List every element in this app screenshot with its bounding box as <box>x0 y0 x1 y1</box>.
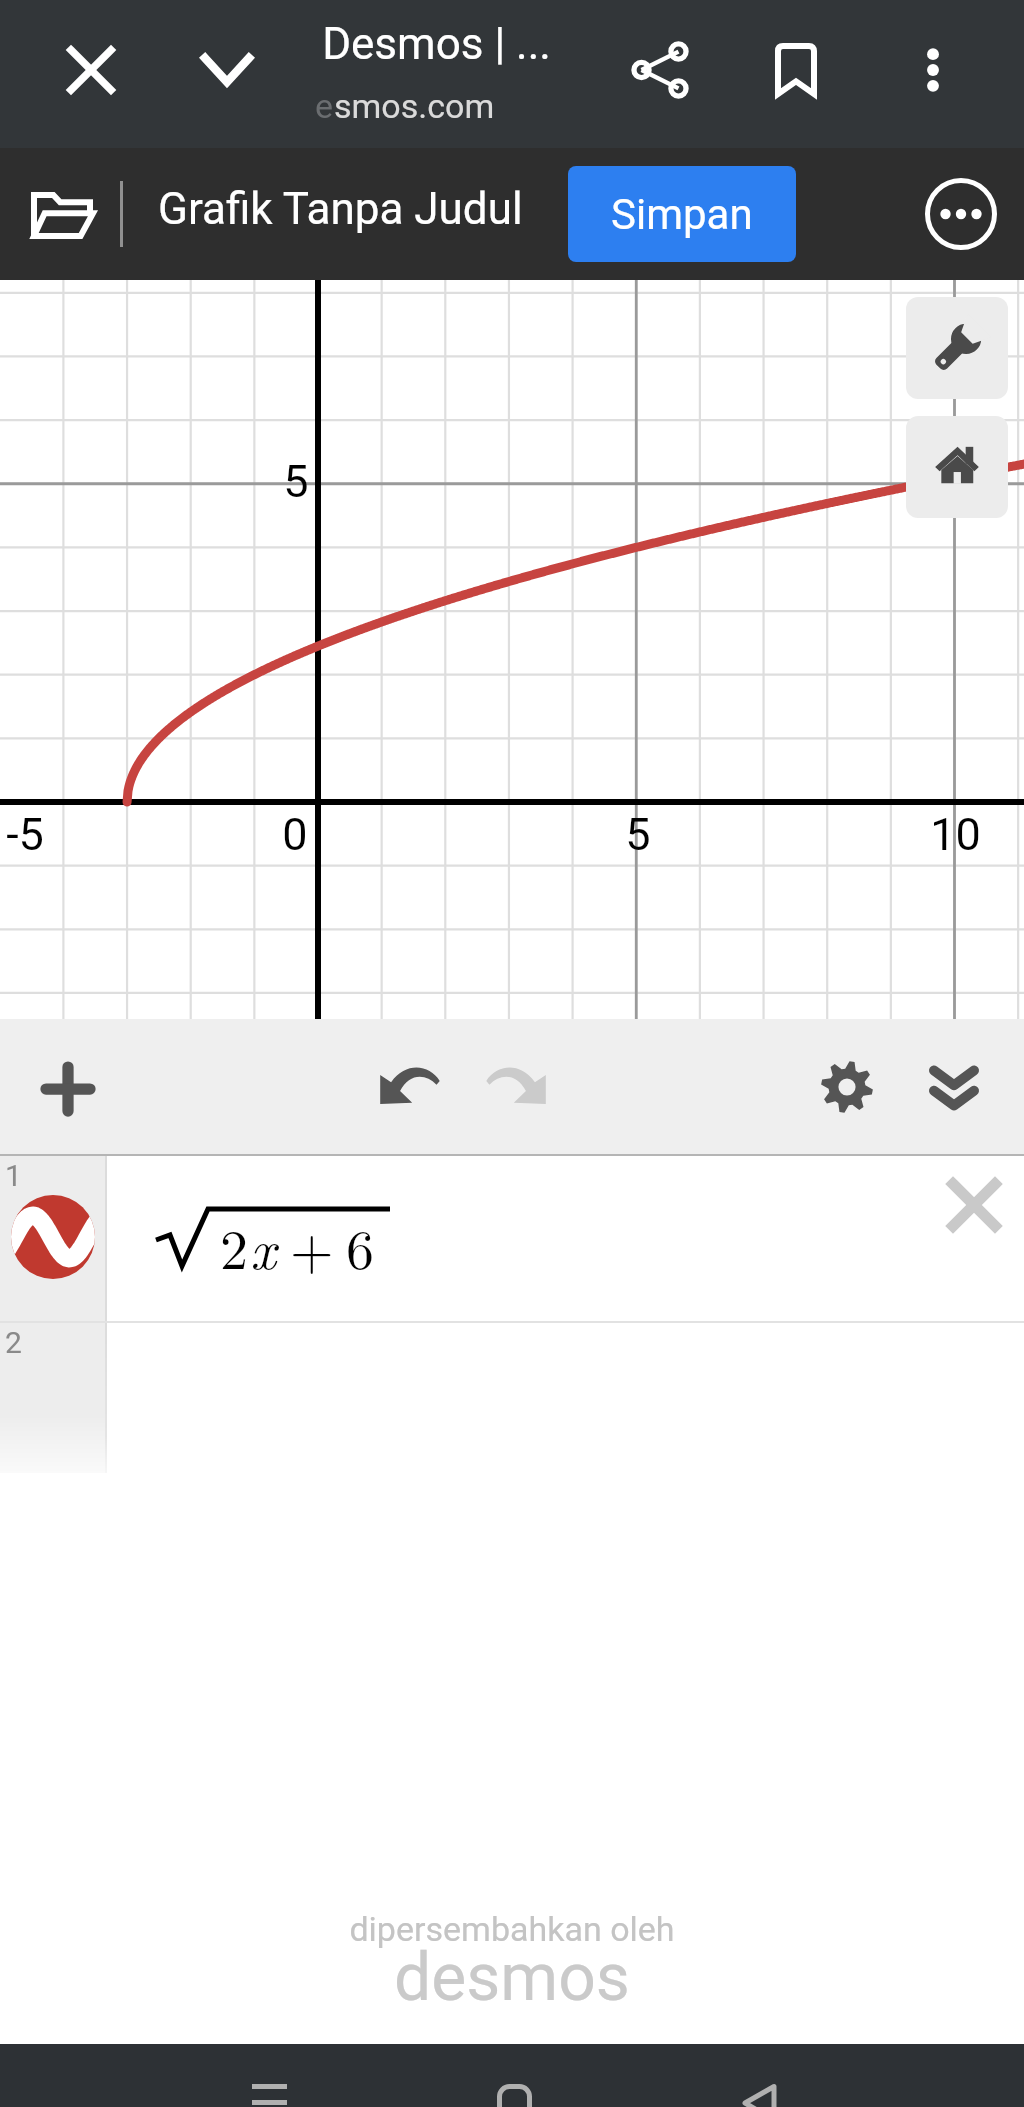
staticText: dipersembahkan oleh <box>349 1909 675 1949</box>
staticText: 0 <box>282 808 308 861</box>
staticText: x <box>250 1206 276 1285</box>
staticText: e <box>315 86 334 126</box>
button[interactable]: More options <box>885 22 981 118</box>
staticText: Desmos | ... <box>322 18 551 70</box>
button[interactable]: 2 <box>0 1323 1024 1473</box>
button[interactable]: 1 <box>0 1156 1024 1323</box>
button[interactable]: Undo <box>362 1039 456 1133</box>
staticText: 2 <box>5 1325 22 1360</box>
staticText: 5 <box>625 808 651 861</box>
button[interactable]: Share <box>612 22 708 118</box>
staticText: Simpan <box>611 190 753 239</box>
button[interactable]: Open folder <box>16 168 108 260</box>
button[interactable]: Graph settings <box>906 297 1008 399</box>
staticText: 10 <box>930 808 981 861</box>
button[interactable]: Redo <box>470 1039 564 1133</box>
button[interactable]: Add expression <box>20 1041 116 1137</box>
button[interactable]: Minimize <box>179 22 275 118</box>
staticText: desmos <box>394 1939 630 2016</box>
staticText: 6 <box>346 1206 374 1285</box>
staticText: + <box>290 1206 334 1285</box>
button[interactable]: Settings <box>800 1040 894 1134</box>
button[interactable]: Delete expression <box>930 1161 1018 1249</box>
button[interactable]: Recents <box>235 2084 303 2107</box>
button[interactable]: Simpan <box>568 166 796 262</box>
staticText: Grafik Tanpa Judul <box>158 183 523 235</box>
staticText: 1 <box>5 1158 22 1193</box>
staticText: 5 <box>283 455 309 508</box>
button[interactable]: Bookmark <box>748 22 844 118</box>
staticText: 2 <box>220 1206 248 1285</box>
button[interactable]: More <box>915 168 1007 260</box>
button[interactable]: Home <box>480 2084 548 2107</box>
staticText: smos.com <box>334 86 495 126</box>
button[interactable]: Close <box>43 22 139 118</box>
button[interactable]: Back <box>725 2084 793 2107</box>
button[interactable]: Home view <box>906 416 1008 518</box>
staticText: -5 <box>6 808 44 861</box>
button[interactable]: Collapse <box>907 1041 1001 1135</box>
